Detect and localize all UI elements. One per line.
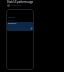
staticText: Recent [8, 19, 15, 22]
staticText: Anna Jane [11, 4, 22, 7]
button[interactable]: Reading [7, 22, 33, 31]
staticText: Reading [8, 22, 17, 25]
staticText: Library [8, 16, 16, 19]
button[interactable]: Play [30, 27, 33, 30]
staticText: Dark UI patterns app [7, 0, 34, 4]
